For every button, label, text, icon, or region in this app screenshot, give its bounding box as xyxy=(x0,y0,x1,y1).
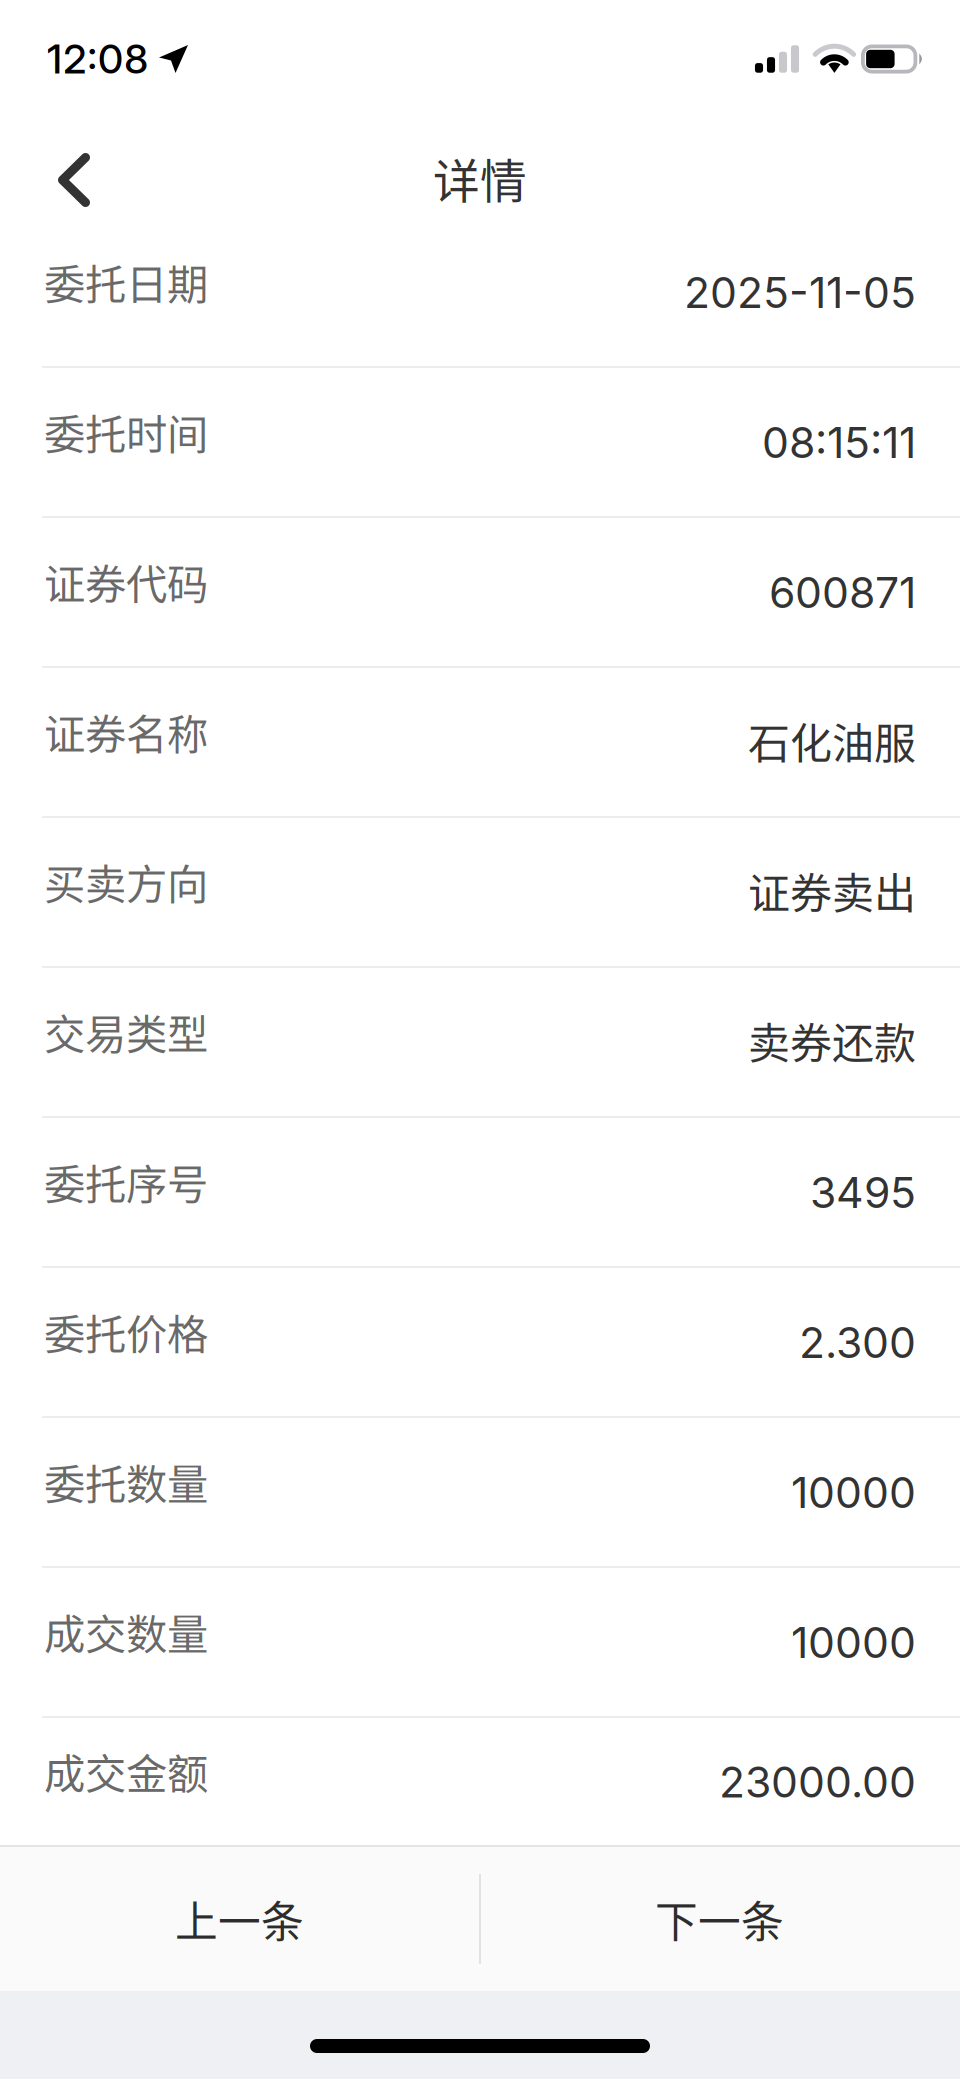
staticText: 委托时间 xyxy=(44,402,208,461)
staticText: 证券代码 xyxy=(44,552,208,611)
staticText: 600871 xyxy=(769,567,916,618)
staticText: 委托日期 xyxy=(44,252,208,311)
button[interactable]: 下一条 xyxy=(479,1847,960,1991)
staticText: 石化油服 xyxy=(748,710,916,771)
staticText: 10000 xyxy=(791,1467,916,1518)
staticText: 2.300 xyxy=(799,1317,916,1368)
staticText: 23000.00 xyxy=(719,1756,916,1808)
staticText: 12:08 xyxy=(47,35,148,83)
button[interactable]: 返回 xyxy=(26,94,122,234)
staticText: 下一条 xyxy=(655,1888,784,1950)
staticText: 证券卖出 xyxy=(748,860,916,921)
staticText: 08:15:11 xyxy=(762,417,916,468)
button[interactable]: 上一条 xyxy=(0,1847,479,1991)
staticText: 详情 xyxy=(433,144,527,212)
staticText: 委托数量 xyxy=(44,1452,208,1511)
staticText: 证券名称 xyxy=(44,702,208,761)
staticText: 交易类型 xyxy=(44,1002,208,1061)
staticText: 成交金额 xyxy=(44,1741,208,1801)
staticText: 2025-11-05 xyxy=(684,267,916,318)
staticText: 卖券还款 xyxy=(748,1010,916,1071)
staticText: 上一条 xyxy=(175,1888,304,1950)
staticText: 成交数量 xyxy=(44,1602,208,1661)
staticText: 委托价格 xyxy=(44,1302,208,1361)
staticText: 买卖方向 xyxy=(44,852,208,911)
staticText: 3495 xyxy=(810,1167,916,1218)
staticText: 10000 xyxy=(791,1617,916,1668)
staticText: 委托序号 xyxy=(44,1152,208,1211)
